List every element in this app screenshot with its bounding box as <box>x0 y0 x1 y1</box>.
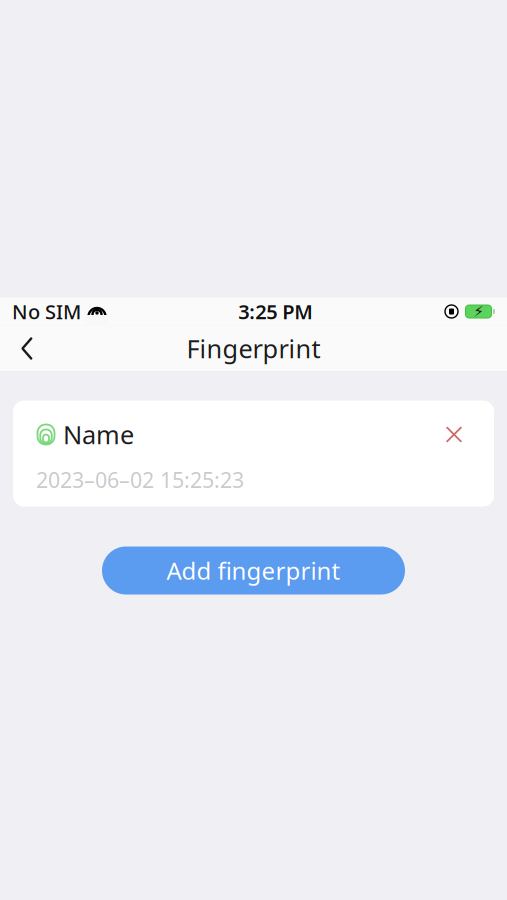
staticText: 2023–06–02 15:25:23 <box>36 465 244 494</box>
staticText: 3:25 PM <box>238 298 313 325</box>
staticText: No SIM <box>12 298 81 325</box>
staticText: Fingerprint <box>186 332 320 365</box>
button[interactable]: Delete fingerprint <box>437 417 471 451</box>
button[interactable]: Add fingerprint <box>102 546 405 594</box>
staticText: Name <box>63 418 134 451</box>
staticText: ⚡︎ <box>473 303 483 320</box>
staticText: Add fingerprint <box>166 555 340 586</box>
button[interactable]: Back <box>0 325 54 371</box>
